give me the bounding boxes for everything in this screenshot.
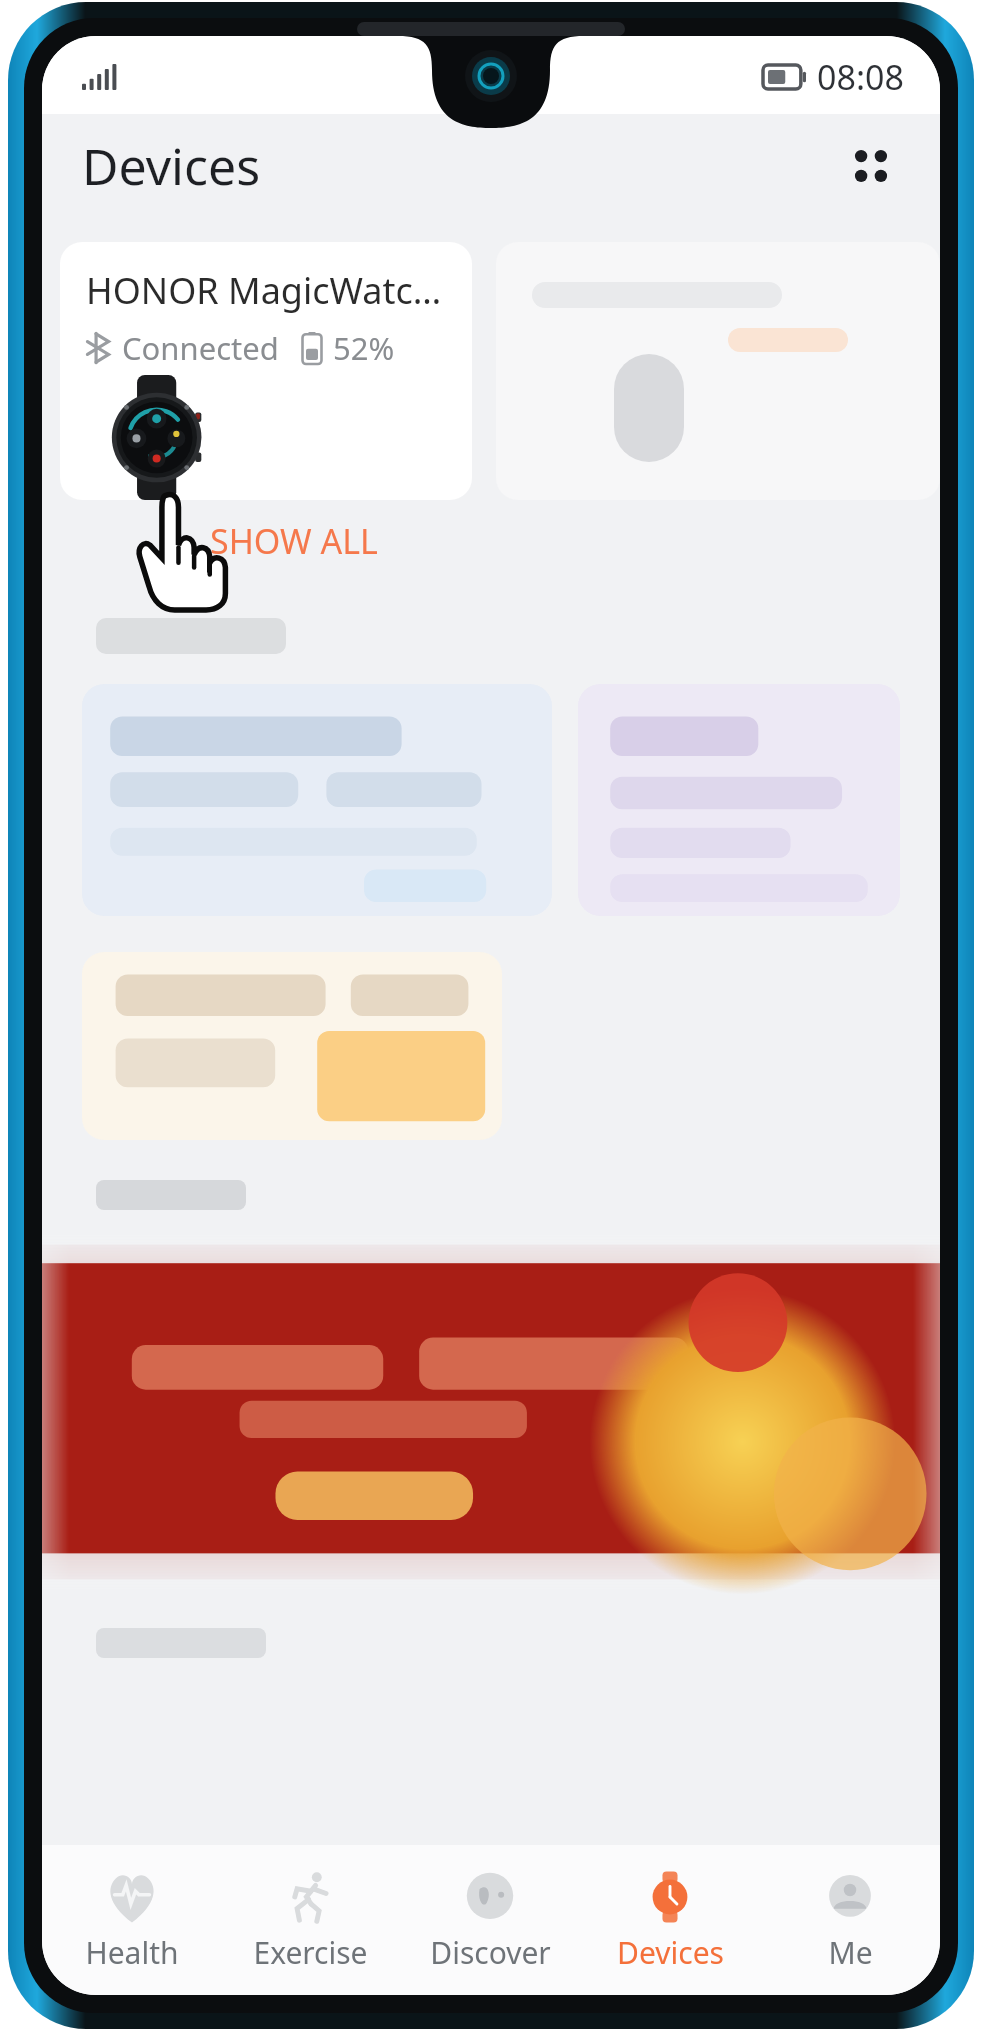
staticText: Health xyxy=(85,1932,179,1973)
button[interactable]: Health xyxy=(42,1845,221,1995)
staticText: Discover xyxy=(430,1932,551,1973)
button[interactable] xyxy=(82,684,552,916)
button[interactable]: Devices xyxy=(580,1845,760,1995)
button[interactable] xyxy=(578,684,900,916)
button[interactable] xyxy=(42,1226,940,1598)
staticText: Devices xyxy=(82,132,261,200)
staticText: 08:08 xyxy=(817,54,904,100)
button[interactable] xyxy=(82,952,502,1140)
staticText: Connected xyxy=(122,327,279,369)
button[interactable]: HONOR MagicWatc… xyxy=(60,242,472,500)
staticText: HONOR MagicWatc… xyxy=(86,266,442,315)
staticText: Me xyxy=(828,1932,873,1973)
button[interactable]: Exercise xyxy=(221,1845,400,1995)
button[interactable]: Discover xyxy=(400,1845,580,1995)
staticText: 52% xyxy=(333,327,395,369)
staticText: Devices xyxy=(617,1932,724,1973)
staticText: SHOW ALL xyxy=(210,518,378,564)
staticText: Exercise xyxy=(253,1932,368,1973)
button[interactable]: Me xyxy=(760,1845,940,1995)
button[interactable]: SHOW ALL xyxy=(194,510,394,572)
button[interactable]: More options xyxy=(828,123,914,209)
